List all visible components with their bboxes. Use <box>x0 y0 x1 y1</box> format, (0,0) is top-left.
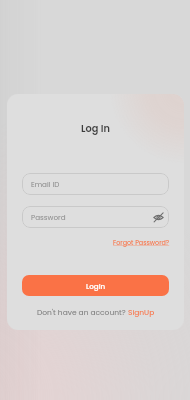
staticText: Don't have an account? <box>37 307 128 317</box>
staticText: Password <box>31 212 66 222</box>
button[interactable]: Email ID <box>22 173 169 195</box>
staticText: Email ID <box>31 179 60 189</box>
button[interactable]: Show password <box>152 211 165 224</box>
staticText: Log In <box>7 122 184 136</box>
button[interactable]: Password <box>22 206 169 228</box>
button[interactable]: Login <box>22 275 169 296</box>
button[interactable]: Forgot Password? <box>113 238 170 247</box>
staticText: Login <box>86 281 106 291</box>
button[interactable]: SignUp <box>128 307 155 317</box>
